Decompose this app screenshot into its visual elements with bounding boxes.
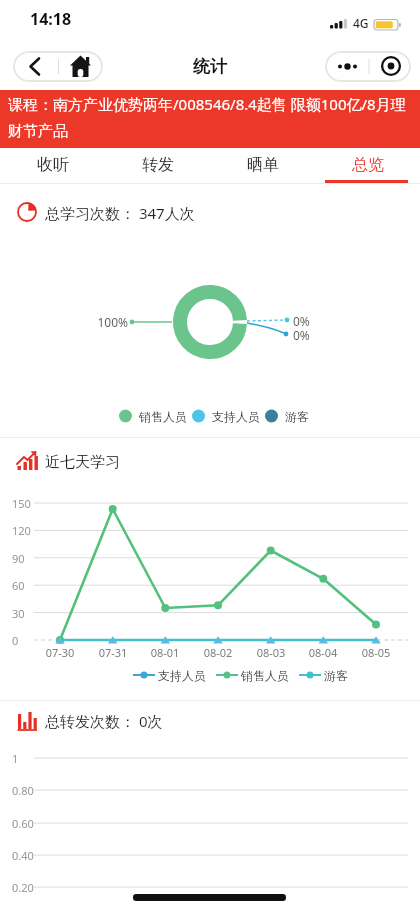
staticText: 支持人员 <box>212 409 260 424</box>
staticText: 14:18 <box>30 8 72 30</box>
staticText: 0.80 <box>12 783 34 798</box>
button[interactable] <box>325 51 368 82</box>
staticText: 08-03 <box>249 645 293 660</box>
button[interactable]: 晒单 <box>210 148 315 182</box>
staticText: 0.40 <box>12 848 34 863</box>
staticText: 08-02 <box>196 645 240 660</box>
staticText: 120 <box>12 523 31 538</box>
staticText: 08-05 <box>354 645 398 660</box>
staticText: 销售人员 <box>241 668 289 683</box>
staticText: 90 <box>12 551 25 566</box>
staticText: 支持人员 <box>158 668 206 683</box>
staticText: 总学习次数： 347人次 <box>45 203 195 223</box>
staticText: 游客 <box>285 409 309 424</box>
staticText: 0% <box>293 313 310 329</box>
staticText: 60 <box>12 578 25 593</box>
button[interactable] <box>368 51 411 82</box>
staticText: 转发 <box>142 155 174 175</box>
button[interactable]: 收听 <box>0 148 105 182</box>
staticText: 近七天学习 <box>45 453 120 472</box>
button[interactable] <box>13 51 58 82</box>
staticText: 0% <box>293 327 310 343</box>
button[interactable]: 总览 <box>315 148 420 182</box>
staticText: 150 <box>12 496 31 511</box>
staticText: 100% <box>92 314 128 330</box>
staticText: 0.60 <box>12 816 34 831</box>
staticText: 1 <box>12 751 19 766</box>
staticText: 07-30 <box>38 645 82 660</box>
staticText: 08-01 <box>143 645 187 660</box>
staticText: 4G <box>353 15 369 31</box>
staticText: 0 <box>12 633 19 648</box>
staticText: 07-31 <box>91 645 135 660</box>
button[interactable]: 课程：南方产业优势两年/008546/8.4起售 限额100亿/8月理财节产品 <box>0 90 420 148</box>
staticText: 晒单 <box>247 155 279 175</box>
staticText: 销售人员 <box>139 409 187 424</box>
staticText: 收听 <box>37 155 69 175</box>
button[interactable] <box>58 51 103 82</box>
staticText: 课程：南方产业优势两年/008546/8.4起售 限额100亿/8月理财节产品 <box>8 94 416 141</box>
staticText: 0.20 <box>12 880 34 895</box>
button[interactable]: 转发 <box>105 148 210 182</box>
staticText: 统计 <box>193 56 227 77</box>
staticText: 总览 <box>352 155 384 175</box>
staticText: 30 <box>12 606 25 621</box>
staticText: 08-04 <box>301 645 345 660</box>
staticText: 总转发次数： 0次 <box>45 711 163 731</box>
staticText: 游客 <box>324 668 348 683</box>
